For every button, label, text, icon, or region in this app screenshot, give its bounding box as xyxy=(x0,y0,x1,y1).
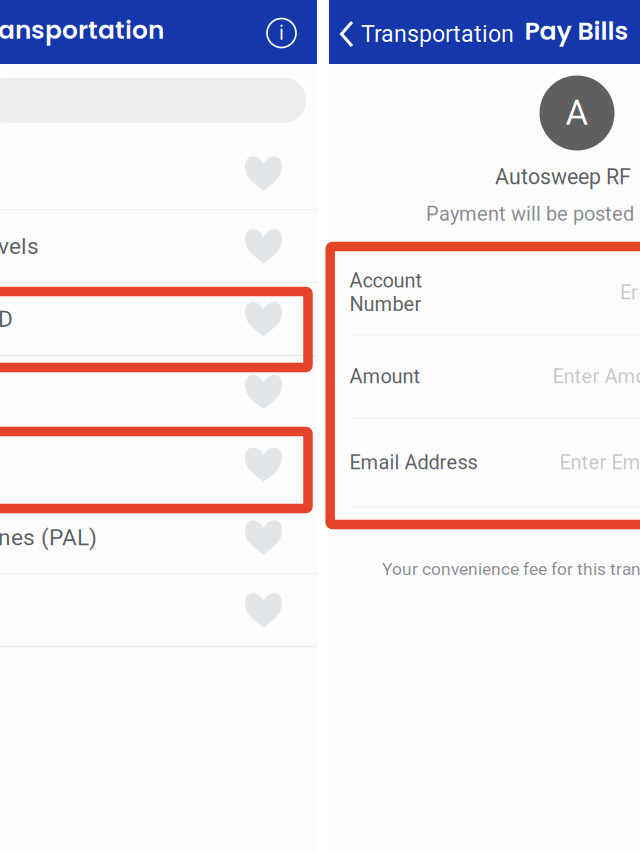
button[interactable]: vels xyxy=(0,210,317,283)
staticText: Enter Amou xyxy=(552,365,640,388)
staticText: vels xyxy=(0,233,39,260)
button[interactable]: Email Address xyxy=(329,418,640,506)
staticText: Payment will be posted xyxy=(426,202,634,226)
staticText: i xyxy=(279,21,284,45)
staticText: D xyxy=(0,306,13,332)
button[interactable]: Account Number xyxy=(329,250,640,334)
staticText: Enter Ema xyxy=(559,451,640,474)
staticText: Email Address xyxy=(349,451,477,474)
button[interactable] xyxy=(0,574,317,647)
button[interactable] xyxy=(0,356,317,429)
staticText: Er xyxy=(620,281,638,304)
button[interactable]: nes (PAL) xyxy=(0,502,317,574)
button[interactable] xyxy=(0,429,317,502)
staticText: Transportation xyxy=(361,20,514,48)
staticText: A xyxy=(565,93,588,133)
staticText: Pay Bills xyxy=(524,13,628,49)
button[interactable] xyxy=(0,65,317,138)
button[interactable] xyxy=(0,138,317,210)
staticText: ansportation xyxy=(0,12,164,47)
staticText: Account Number xyxy=(349,269,422,316)
button[interactable]: D xyxy=(0,283,317,356)
button[interactable]: Transportation xyxy=(333,11,520,57)
staticText: Your convenience fee for this transa xyxy=(382,559,640,579)
button[interactable]: Amount xyxy=(329,335,640,417)
staticText: Amount xyxy=(349,365,420,388)
staticText: Autosweep RF xyxy=(495,164,631,189)
button[interactable]: Information xyxy=(259,8,304,57)
staticText: nes (PAL) xyxy=(0,524,97,551)
